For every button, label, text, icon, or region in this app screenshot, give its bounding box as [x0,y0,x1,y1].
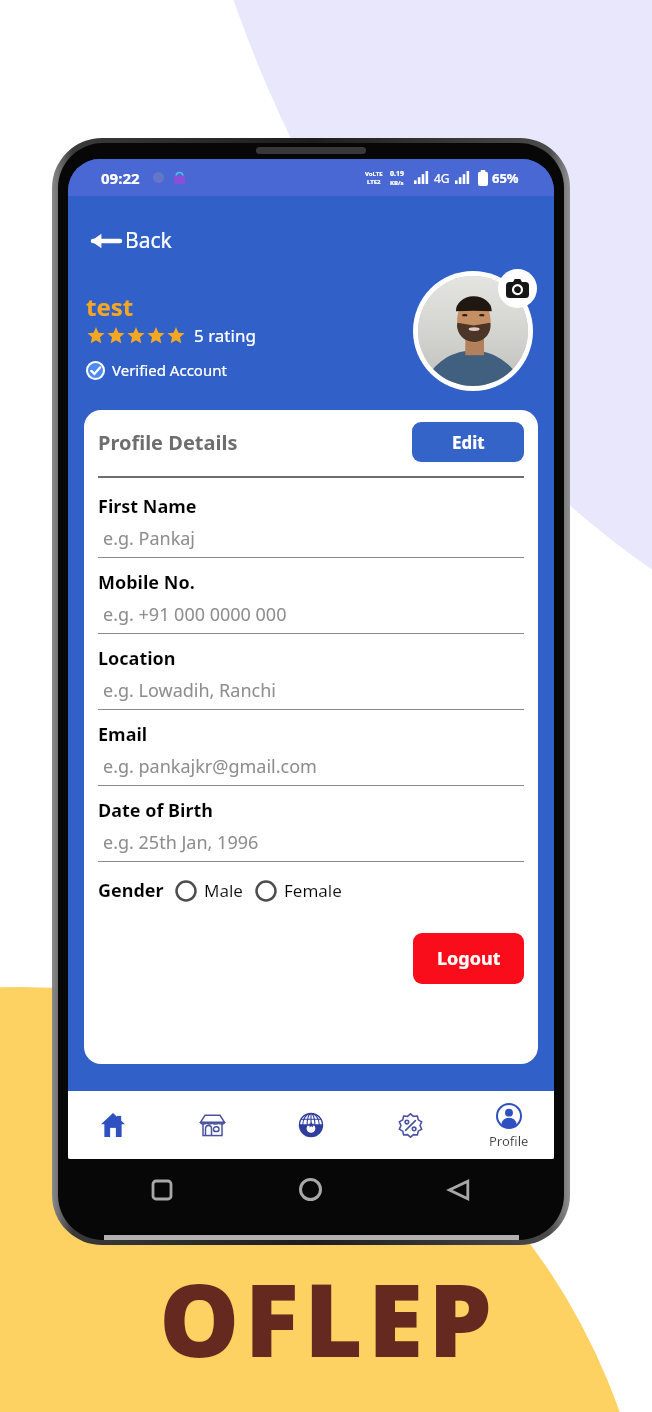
staticText: LTE2 [367,178,381,186]
staticText: e.g. 25th Jan, 1996 [103,830,259,855]
staticText: e.g. +91 000 0000 000 [103,602,287,627]
staticText: First Name [98,494,197,519]
staticText: KB/s [390,179,404,187]
staticText: e.g. Lowadih, Ranchi [103,678,276,703]
staticText: Profile Details [98,429,238,456]
button[interactable]: Female [255,879,342,902]
button[interactable]: Profile photo [418,276,528,386]
staticText: VoLTE [365,170,383,178]
staticText: e.g. Pankaj [103,526,196,551]
button[interactable]: Home [91,1091,135,1159]
staticText: 09:22 [101,168,140,188]
staticText: 0.19 [390,169,404,179]
staticText: OFLEP [159,1249,497,1387]
staticText: Female [284,879,342,902]
button[interactable]: Offers [388,1091,432,1159]
staticText: Email [98,722,148,747]
staticText: Edit [452,431,485,454]
button[interactable]: Logout [413,933,524,984]
staticText: e.g. pankajkr@gmail.com [103,754,317,779]
staticText: Male [204,879,243,902]
staticText: Mobile No. [98,570,195,595]
staticText: Back [125,226,172,255]
button[interactable]: Back [90,226,172,255]
button[interactable]: Web [289,1091,333,1159]
staticText: 5 rating [194,324,256,347]
staticText: Verified Account [112,360,227,380]
staticText: Gender [98,878,164,903]
staticText: Location [98,646,176,671]
staticText: 4G [434,170,450,186]
staticText: Profile [489,1132,529,1150]
staticText: 65% [492,169,519,187]
button[interactable]: Male [175,879,243,902]
button[interactable]: Edit [412,422,524,462]
staticText: Logout [437,946,501,971]
staticText: Date of Birth [98,798,214,823]
button[interactable]: Store [190,1091,234,1159]
button[interactable]: Change photo [498,269,537,308]
button[interactable]: Profile [487,1091,531,1159]
staticText: test [86,290,134,323]
